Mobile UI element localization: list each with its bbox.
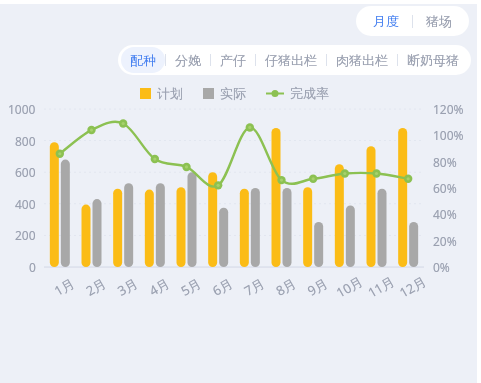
staticText: 完成率	[290, 85, 329, 101]
button[interactable]: 月度	[360, 8, 412, 34]
button[interactable]: 仔猪出栏	[256, 47, 326, 73]
button[interactable]: 断奶母猪	[398, 47, 468, 73]
staticText: 计划	[157, 85, 183, 101]
staticText: 实际	[220, 85, 246, 101]
button[interactable]: 实际	[203, 85, 246, 101]
button[interactable]: 肉猪出栏	[327, 47, 397, 73]
button[interactable]: 猪场	[413, 8, 465, 34]
staticText: 猪场	[426, 13, 452, 29]
staticText: 断奶母猪	[407, 52, 459, 68]
staticText: 月度	[373, 13, 399, 29]
staticText: 产仔	[220, 52, 246, 68]
button[interactable]: 配种	[121, 47, 165, 73]
staticText: 分娩	[175, 52, 201, 68]
button[interactable]: 分娩	[166, 47, 210, 73]
button[interactable]: 完成率	[266, 85, 329, 101]
button[interactable]: 计划	[140, 85, 183, 101]
staticText: 配种	[130, 52, 156, 68]
staticText: 仔猪出栏	[265, 52, 317, 68]
button[interactable]: 产仔	[211, 47, 255, 73]
staticText: 肉猪出栏	[336, 52, 388, 68]
